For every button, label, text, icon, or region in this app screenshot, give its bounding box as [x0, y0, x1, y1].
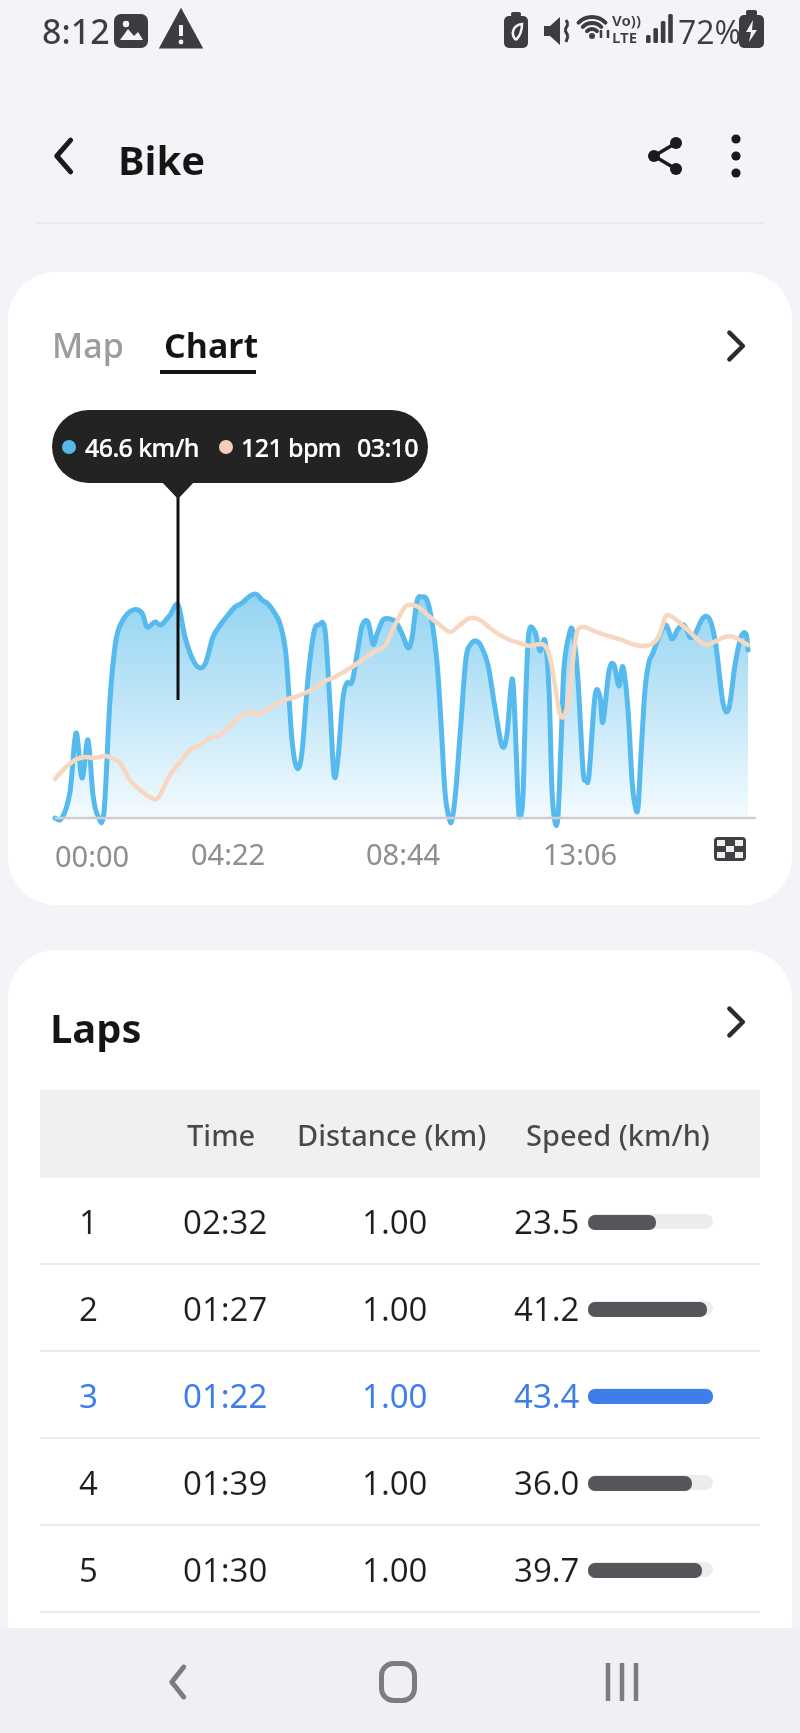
- staticText: 23.5: [514, 1199, 580, 1244]
- staticText: 4: [79, 1460, 98, 1505]
- staticText: 1.00: [362, 1373, 428, 1418]
- staticText: 43.4: [514, 1373, 580, 1418]
- staticText: 8:12: [42, 8, 110, 54]
- button[interactable]: [636, 128, 694, 184]
- staticText: 01:39: [183, 1460, 268, 1505]
- button[interactable]: [140, 1644, 216, 1720]
- button[interactable]: Map: [38, 312, 138, 378]
- staticText: Laps: [50, 1000, 142, 1054]
- staticText: 36.0: [514, 1460, 580, 1505]
- staticText: 3: [79, 1373, 98, 1418]
- staticText: 03:10: [357, 430, 419, 464]
- staticText: 121 bpm: [241, 430, 341, 464]
- staticText: 1.00: [362, 1286, 428, 1331]
- staticText: Time: [187, 1115, 256, 1154]
- staticText: Map: [52, 322, 124, 368]
- staticText: 2: [79, 1286, 98, 1331]
- staticText: 01:22: [183, 1373, 268, 1418]
- staticText: 04:22: [191, 834, 266, 873]
- button[interactable]: 1: [8, 1178, 792, 1265]
- staticText: Vo)): [612, 10, 641, 30]
- button[interactable]: [713, 1000, 757, 1044]
- button[interactable]: [708, 128, 764, 184]
- button[interactable]: 2: [8, 1265, 792, 1352]
- staticText: 41.2: [514, 1286, 580, 1331]
- button[interactable]: [360, 1644, 436, 1720]
- staticText: Distance (km): [297, 1115, 487, 1154]
- staticText: 13:06: [543, 834, 618, 873]
- button[interactable]: [36, 128, 92, 184]
- button[interactable]: 5: [8, 1526, 792, 1613]
- staticText: 02:32: [183, 1199, 268, 1244]
- staticText: Bike: [118, 132, 206, 186]
- staticText: 00:00: [55, 836, 130, 875]
- staticText: LTE: [612, 27, 638, 47]
- staticText: 1.00: [362, 1460, 428, 1505]
- staticText: 1: [79, 1199, 98, 1244]
- button[interactable]: [713, 324, 757, 368]
- staticText: 72%: [678, 10, 742, 54]
- button[interactable]: [584, 1644, 660, 1720]
- staticText: 08:44: [366, 834, 441, 873]
- button[interactable]: Chart: [156, 312, 266, 378]
- staticText: 5: [79, 1547, 98, 1592]
- staticText: 01:30: [183, 1547, 268, 1592]
- staticText: Speed (km/h): [526, 1115, 710, 1154]
- button[interactable]: 3: [8, 1352, 792, 1439]
- staticText: 39.7: [514, 1547, 580, 1592]
- staticText: Chart: [164, 322, 259, 368]
- staticText: 1.00: [362, 1199, 428, 1244]
- staticText: 46.6 km/h: [85, 430, 199, 464]
- staticText: 1.00: [362, 1547, 428, 1592]
- button[interactable]: 4: [8, 1439, 792, 1526]
- staticText: 01:27: [183, 1286, 268, 1331]
